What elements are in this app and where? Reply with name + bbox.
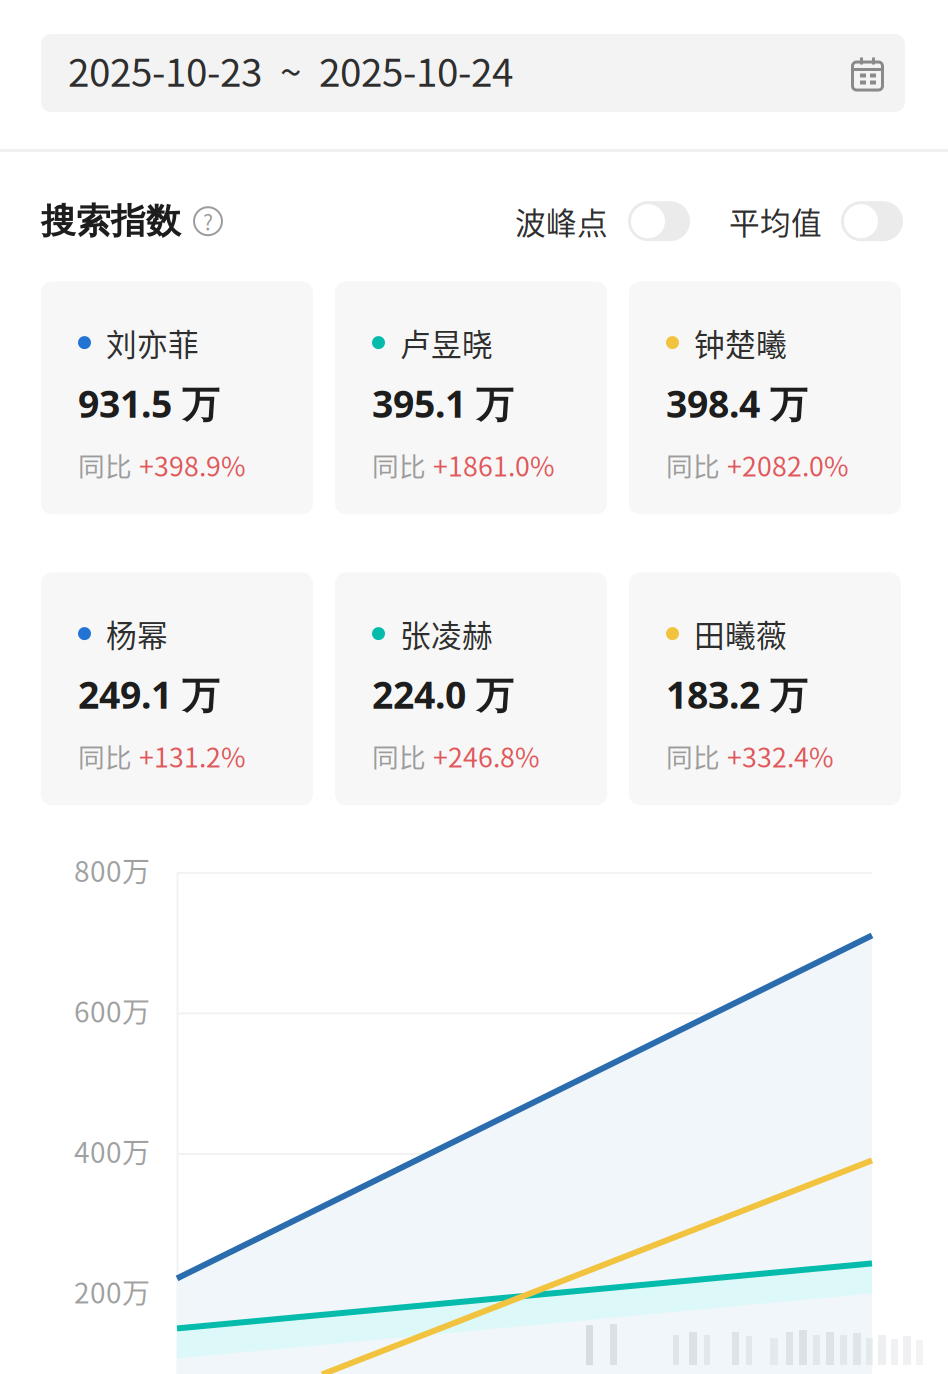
staticText: +131.2% (139, 737, 246, 775)
staticText: 搜索指数 (41, 199, 181, 243)
staticText: 张凌赫 (400, 611, 493, 656)
staticText: 224.0 万 (372, 669, 513, 720)
staticText: 钟楚曦 (694, 320, 787, 365)
staticText: 800万 (74, 849, 150, 890)
staticText: 931.5 万 (78, 378, 219, 429)
staticText: +246.8% (433, 737, 540, 775)
staticText: +398.9% (139, 446, 246, 484)
staticText: 395.1 万 (372, 378, 513, 429)
staticText: 卢昱晓 (400, 320, 493, 365)
staticText: 398.4 万 (666, 378, 807, 429)
staticText: 249.1 万 (78, 669, 219, 720)
button[interactable]: 2025-10-23 ~ 2025-10-24 (41, 34, 905, 112)
staticText: +2082.0% (727, 446, 849, 484)
staticText: 400万 (74, 1130, 150, 1171)
staticText: 波峰点 (515, 199, 608, 243)
staticText: +1861.0% (433, 446, 555, 484)
button[interactable]: 杨幂 (41, 572, 313, 805)
staticText: 刘亦菲 (106, 320, 199, 365)
staticText: 同比 (78, 737, 132, 775)
staticText: 600万 (74, 990, 150, 1030)
staticText: +332.4% (727, 737, 834, 775)
button[interactable]: 田曦薇 (629, 572, 901, 805)
button[interactable]: 刘亦菲 (41, 281, 313, 514)
staticText: 同比 (666, 737, 720, 775)
button[interactable]: 张凌赫 (335, 572, 607, 805)
staticText: 杨幂 (106, 611, 168, 656)
staticText: 200万 (74, 1271, 150, 1311)
staticText: 同比 (666, 446, 720, 484)
button[interactable]: 卢昱晓 (335, 281, 607, 514)
staticText: ? (203, 206, 213, 237)
staticText: 同比 (372, 737, 426, 775)
staticText: 同比 (78, 446, 132, 484)
staticText: 田曦薇 (694, 611, 787, 656)
staticText: 183.2 万 (666, 669, 807, 720)
staticText: 同比 (372, 446, 426, 484)
button[interactable]: 钟楚曦 (629, 281, 901, 514)
staticText: 平均值 (729, 199, 822, 243)
staticText: 2025-10-23 ~ 2025-10-24 (68, 42, 513, 98)
